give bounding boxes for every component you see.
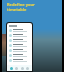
button[interactable]: Tab: [15, 67, 18, 70]
staticText: timetable: [7, 7, 27, 12]
button[interactable]: [7, 58, 32, 63]
button[interactable]: Tab: [26, 67, 29, 70]
button[interactable]: [7, 43, 32, 48]
button[interactable]: [7, 28, 32, 33]
button[interactable]: [7, 33, 32, 38]
button[interactable]: [7, 38, 32, 43]
button[interactable]: Tab: [21, 67, 24, 70]
button[interactable]: Tab: [10, 67, 13, 70]
button[interactable]: [7, 53, 32, 58]
staticText: Redefine your: [7, 2, 35, 7]
button[interactable]: [7, 48, 32, 53]
